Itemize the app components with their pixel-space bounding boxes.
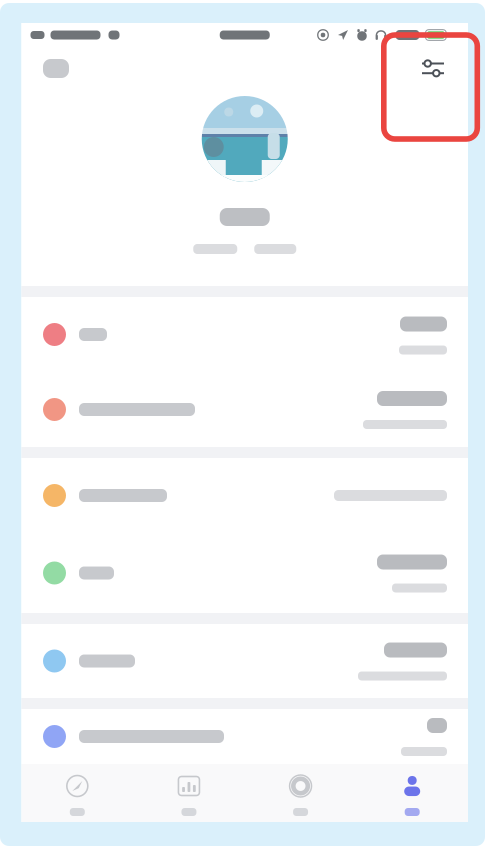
button[interactable]: 我的 — [356, 764, 468, 822]
button[interactable] — [21, 297, 468, 372]
button[interactable]: 首页 — [21, 764, 133, 822]
button[interactable]: 账本 — [133, 764, 245, 822]
button[interactable] — [21, 372, 468, 447]
button[interactable]: 发现 — [245, 764, 356, 822]
button[interactable] — [21, 709, 468, 764]
button[interactable]: Profile photo — [202, 96, 288, 182]
button[interactable] — [21, 458, 468, 533]
button[interactable] — [21, 624, 468, 698]
button[interactable]: Filter settings — [416, 51, 450, 85]
button[interactable] — [21, 533, 468, 613]
